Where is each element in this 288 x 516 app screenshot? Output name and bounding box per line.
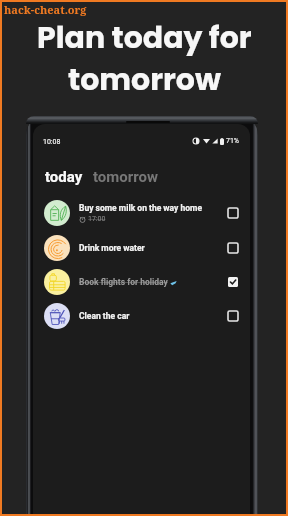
staticText: Drink more water <box>79 243 145 253</box>
button[interactable]: Mark complete <box>224 239 242 257</box>
staticText: tomorrow <box>68 59 221 101</box>
button[interactable]: Drink more water <box>33 231 250 265</box>
staticText: Book flights for holiday <box>79 277 168 287</box>
button[interactable]: Mark complete <box>224 204 242 222</box>
staticText: 10:08 <box>43 138 61 146</box>
staticText: 17:00 <box>88 215 106 223</box>
button[interactable]: Book flights for holiday <box>33 265 250 299</box>
button[interactable]: Mark incomplete <box>224 273 242 291</box>
staticText: Buy some milk on the way home <box>79 203 203 213</box>
button[interactable]: today <box>44 168 84 186</box>
button[interactable]: Clean the car <box>33 299 250 333</box>
button[interactable]: Buy some milk on the way home <box>33 196 250 230</box>
button[interactable]: Mark complete <box>224 307 242 325</box>
button[interactable]: tomorrow <box>92 168 159 186</box>
staticText: Clean the car <box>79 311 130 321</box>
staticText: hack-cheat.org <box>4 2 87 17</box>
staticText: Plan today for <box>37 17 252 59</box>
staticText: 71% <box>226 137 239 145</box>
